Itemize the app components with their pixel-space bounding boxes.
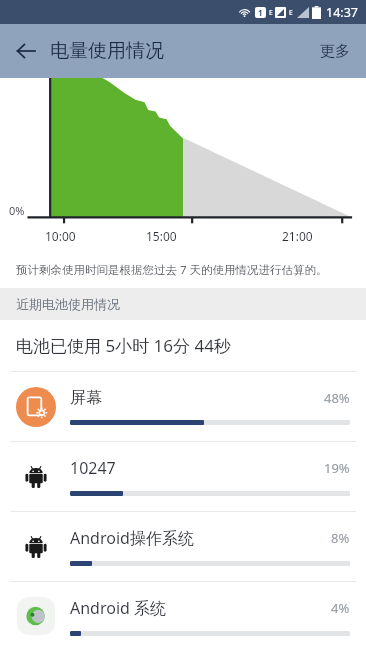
staticText: 8% [331,529,350,547]
staticText: 10247 [70,457,324,479]
staticText: 屏幕 [70,388,324,408]
staticText: 10:00 [45,228,76,244]
staticText: 更多 [320,42,350,61]
staticText: 19% [324,459,350,477]
button[interactable]: Android操作系统 [0,512,366,581]
staticText: 48% [324,389,350,407]
button[interactable]: 更多 [304,24,366,78]
staticText: 电量使用情况 [50,39,164,63]
staticText: 14:37 [326,4,358,21]
staticText: E [289,8,293,17]
staticText: 21:00 [282,228,313,244]
staticText: 电池已使用 5小时 16分 44秒 [16,334,231,357]
staticText: 预计剩余使用时间是根据您过去 7 天的使用情况进行估算的。 [16,262,328,278]
staticText: 4% [331,599,350,617]
button[interactable]: Android 系统 [0,582,366,650]
button[interactable]: 屏幕 [0,372,366,441]
button[interactable]: Back [6,31,46,71]
staticText: 1 [258,7,263,18]
staticText: Android操作系统 [70,527,331,549]
staticText: 近期电池使用情况 [16,296,120,312]
staticText: E [269,8,273,17]
staticText: 0% [9,203,25,218]
button[interactable]: 10247 [0,442,366,511]
staticText: 15:00 [146,228,177,244]
staticText: Android 系统 [70,597,331,619]
